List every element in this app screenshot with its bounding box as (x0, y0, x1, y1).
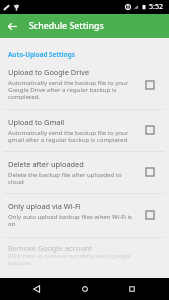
staticText: Only upload via Wi-Fi (8, 201, 81, 211)
staticText: Delete the backup file after uploaded to… (8, 170, 133, 185)
button[interactable]: Back (0, 14, 24, 38)
button[interactable]: Back (26, 278, 48, 300)
button[interactable]: Upload to Gmail (0, 110, 169, 151)
staticText: Automatically send the backup file to yo… (8, 78, 133, 100)
button[interactable]: Home (74, 278, 96, 300)
staticText: Upload to Google Drive (8, 67, 90, 77)
button[interactable]: Remove Google account (0, 238, 169, 275)
button[interactable]: Only upload via Wi-Fi (0, 194, 169, 237)
staticText: Upload to Gmail (8, 117, 65, 127)
staticText: Automatically send the backup file to yo… (8, 128, 133, 143)
staticText: Schedule Settings (29, 20, 104, 32)
staticText: Remove Google account (8, 243, 93, 253)
button[interactable]: Upload to Google Drive (0, 60, 169, 109)
staticText: Click here to remove currently used goog… (8, 251, 133, 267)
staticText: Auto-Upload Settings (8, 50, 75, 59)
staticText: Only auto upload backup files when Wi-Fi… (8, 212, 133, 227)
staticText: 5:52 (149, 2, 163, 12)
button[interactable]: Recents (121, 278, 143, 300)
staticText: Delete after uploaded (8, 159, 84, 169)
button[interactable]: Delete after uploaded (0, 152, 169, 193)
